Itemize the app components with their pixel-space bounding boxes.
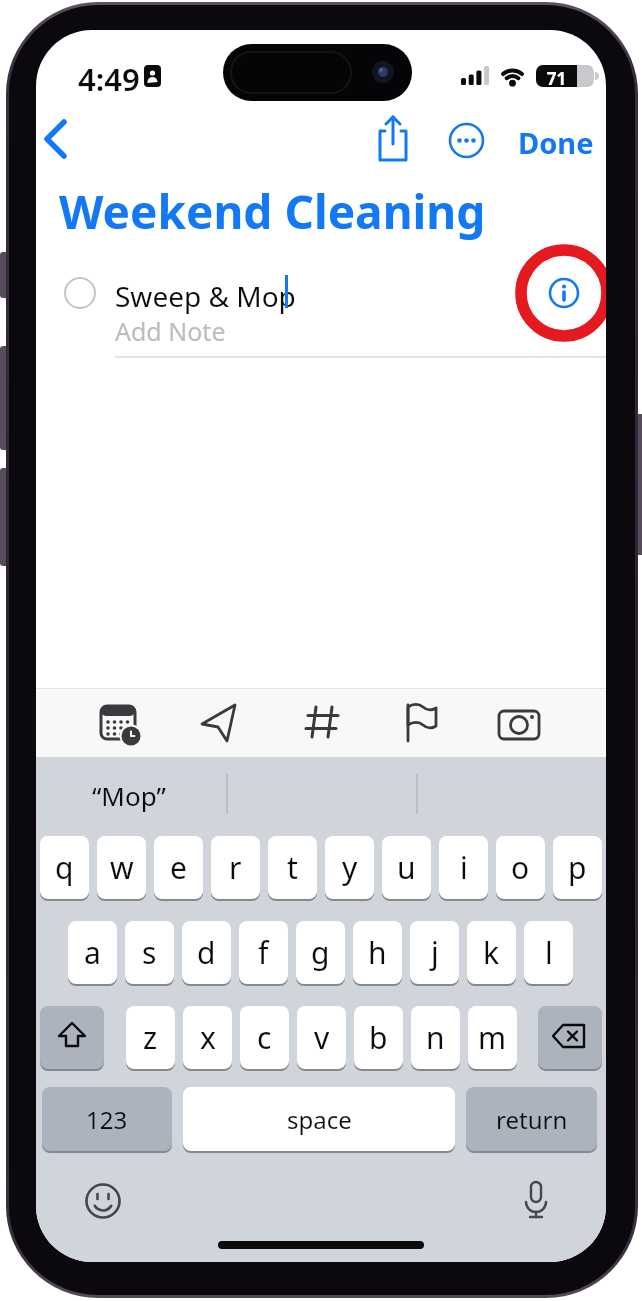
- button[interactable]: return: [466, 1087, 597, 1151]
- button[interactable]: o: [496, 836, 545, 899]
- staticText: 4:49: [78, 58, 140, 100]
- button[interactable]: p: [553, 836, 602, 899]
- staticText: 71: [536, 67, 577, 90]
- button[interactable]: [399, 700, 443, 744]
- button[interactable]: [373, 114, 413, 164]
- staticText: y: [342, 847, 358, 888]
- staticText: w: [110, 847, 134, 888]
- staticText: v: [314, 1017, 330, 1058]
- button[interactable]: k: [467, 921, 516, 984]
- button[interactable]: u: [382, 836, 431, 899]
- button[interactable]: g: [296, 921, 345, 984]
- button[interactable]: [540, 269, 588, 317]
- button[interactable]: h: [353, 921, 402, 984]
- button[interactable]: [80, 1178, 126, 1224]
- button[interactable]: [197, 700, 241, 744]
- staticText: u: [397, 847, 416, 888]
- button[interactable]: d: [182, 921, 231, 984]
- staticText: x: [200, 1017, 216, 1058]
- button[interactable]: v: [297, 1006, 346, 1069]
- staticText: j: [431, 932, 439, 973]
- button[interactable]: x: [183, 1006, 232, 1069]
- button[interactable]: [301, 700, 345, 744]
- button[interactable]: [38, 116, 78, 162]
- staticText: Weekend Cleaning: [59, 180, 486, 243]
- staticText: f: [258, 932, 269, 973]
- staticText: i: [460, 847, 468, 888]
- button[interactable]: [97, 700, 141, 744]
- button[interactable]: n: [411, 1006, 460, 1069]
- staticText: a: [84, 932, 101, 973]
- button[interactable]: b: [354, 1006, 403, 1069]
- staticText: o: [511, 847, 530, 888]
- button[interactable]: r: [211, 836, 260, 899]
- staticText: h: [368, 932, 387, 973]
- staticText: s: [142, 932, 157, 973]
- button[interactable]: j: [410, 921, 459, 984]
- staticText: c: [257, 1017, 272, 1058]
- button[interactable]: space: [183, 1087, 455, 1151]
- button[interactable]: a: [68, 921, 117, 984]
- staticText: d: [197, 932, 216, 973]
- staticText: k: [483, 932, 500, 973]
- button[interactable]: [497, 700, 541, 744]
- staticText: Done: [518, 123, 594, 162]
- button[interactable]: [448, 122, 485, 159]
- staticText: b: [369, 1017, 388, 1058]
- staticText: g: [311, 932, 330, 973]
- staticText: l: [545, 932, 553, 973]
- staticText: “Mop”: [92, 778, 166, 813]
- button[interactable]: s: [125, 921, 174, 984]
- button[interactable]: 123: [42, 1087, 172, 1151]
- button[interactable]: e: [154, 836, 203, 899]
- staticText: t: [287, 847, 298, 888]
- staticText: n: [426, 1017, 445, 1058]
- staticText: Sweep & Mop: [115, 277, 296, 315]
- button[interactable]: [513, 1176, 559, 1222]
- staticText: z: [143, 1017, 158, 1058]
- button[interactable]: z: [126, 1006, 175, 1069]
- button[interactable]: [538, 1006, 602, 1069]
- button[interactable]: c: [240, 1006, 289, 1069]
- staticText: e: [170, 847, 187, 888]
- staticText: 123: [86, 1103, 128, 1136]
- staticText: return: [496, 1103, 568, 1136]
- staticText: p: [568, 847, 587, 888]
- button[interactable]: f: [239, 921, 288, 984]
- button[interactable]: w: [97, 836, 146, 899]
- button[interactable]: i: [439, 836, 488, 899]
- button[interactable]: q: [40, 836, 89, 899]
- button[interactable]: l: [524, 921, 573, 984]
- button[interactable]: y: [325, 836, 374, 899]
- button[interactable]: [40, 1006, 104, 1069]
- staticText: r: [229, 847, 242, 888]
- staticText: Add Note: [115, 314, 226, 348]
- button[interactable]: m: [468, 1006, 517, 1069]
- staticText: space: [287, 1103, 352, 1136]
- staticText: m: [478, 1017, 507, 1058]
- button[interactable]: Done: [516, 122, 596, 162]
- button[interactable]: t: [268, 836, 317, 899]
- staticText: q: [55, 847, 74, 888]
